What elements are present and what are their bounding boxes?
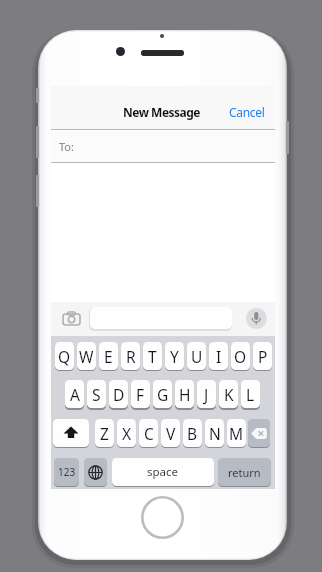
button[interactable]: D	[109, 380, 128, 408]
button[interactable]: T	[143, 342, 162, 370]
button[interactable]: M	[227, 419, 246, 447]
button[interactable]: I	[209, 342, 228, 370]
button[interactable]: Q	[55, 342, 74, 370]
button[interactable]: K	[219, 380, 238, 408]
button[interactable]: G	[153, 380, 172, 408]
staticText: N	[209, 423, 221, 444]
button[interactable]: C	[139, 419, 158, 447]
button[interactable]: V	[161, 419, 180, 447]
staticText: W	[79, 346, 94, 367]
staticText: F	[136, 384, 145, 405]
staticText: B	[187, 423, 198, 444]
button[interactable]	[248, 419, 270, 447]
button[interactable]: F	[131, 380, 150, 408]
staticText: To:	[59, 139, 74, 154]
staticText: 123	[58, 465, 76, 479]
staticText: Cancel	[229, 104, 265, 120]
staticText: P	[258, 346, 268, 367]
button[interactable]	[62, 311, 82, 326]
button[interactable]: J	[197, 380, 216, 408]
staticText: E	[104, 346, 113, 367]
staticText: V	[166, 423, 176, 444]
staticText: S	[92, 384, 101, 405]
staticText: L	[246, 384, 255, 405]
button[interactable]: O	[231, 342, 250, 370]
staticText: space	[147, 464, 179, 480]
staticText: return	[228, 465, 261, 480]
staticText: T	[148, 346, 157, 367]
button[interactable]: return	[218, 458, 271, 486]
button[interactable]: Z	[95, 419, 114, 447]
staticText: New Message	[123, 104, 201, 120]
button[interactable]: S	[87, 380, 106, 408]
button[interactable]: U	[187, 342, 206, 370]
button[interactable]: R	[121, 342, 140, 370]
button[interactable]: space	[112, 458, 214, 486]
staticText: A	[70, 384, 80, 405]
button[interactable]: X	[117, 419, 136, 447]
button[interactable]: N	[205, 419, 224, 447]
staticText: R	[126, 346, 136, 367]
button[interactable]: L	[241, 380, 260, 408]
staticText: J	[204, 384, 209, 405]
staticText: D	[113, 384, 125, 405]
button[interactable]: Y	[165, 342, 184, 370]
button[interactable]	[51, 130, 275, 162]
button[interactable]: A	[65, 380, 84, 408]
staticText: O	[234, 346, 247, 367]
staticText: Y	[170, 346, 179, 367]
button[interactable]: 123	[54, 458, 79, 486]
button[interactable]: H	[175, 380, 194, 408]
staticText: U	[191, 346, 203, 367]
staticText: X	[122, 423, 132, 444]
button[interactable]	[84, 458, 107, 486]
button[interactable]: E	[99, 342, 118, 370]
staticText: Z	[100, 423, 109, 444]
button[interactable]: P	[253, 342, 272, 370]
button[interactable]	[246, 308, 267, 329]
button[interactable]	[141, 496, 184, 539]
staticText: Q	[58, 346, 71, 367]
staticText: K	[224, 384, 234, 405]
staticText: C	[144, 423, 154, 444]
button[interactable]: B	[183, 419, 202, 447]
button[interactable]: W	[77, 342, 96, 370]
staticText: G	[157, 384, 169, 405]
button[interactable]	[53, 419, 89, 447]
button[interactable]: Cancel	[222, 100, 272, 124]
staticText: H	[179, 384, 191, 405]
staticText: M	[229, 423, 244, 444]
staticText: I	[216, 346, 222, 367]
